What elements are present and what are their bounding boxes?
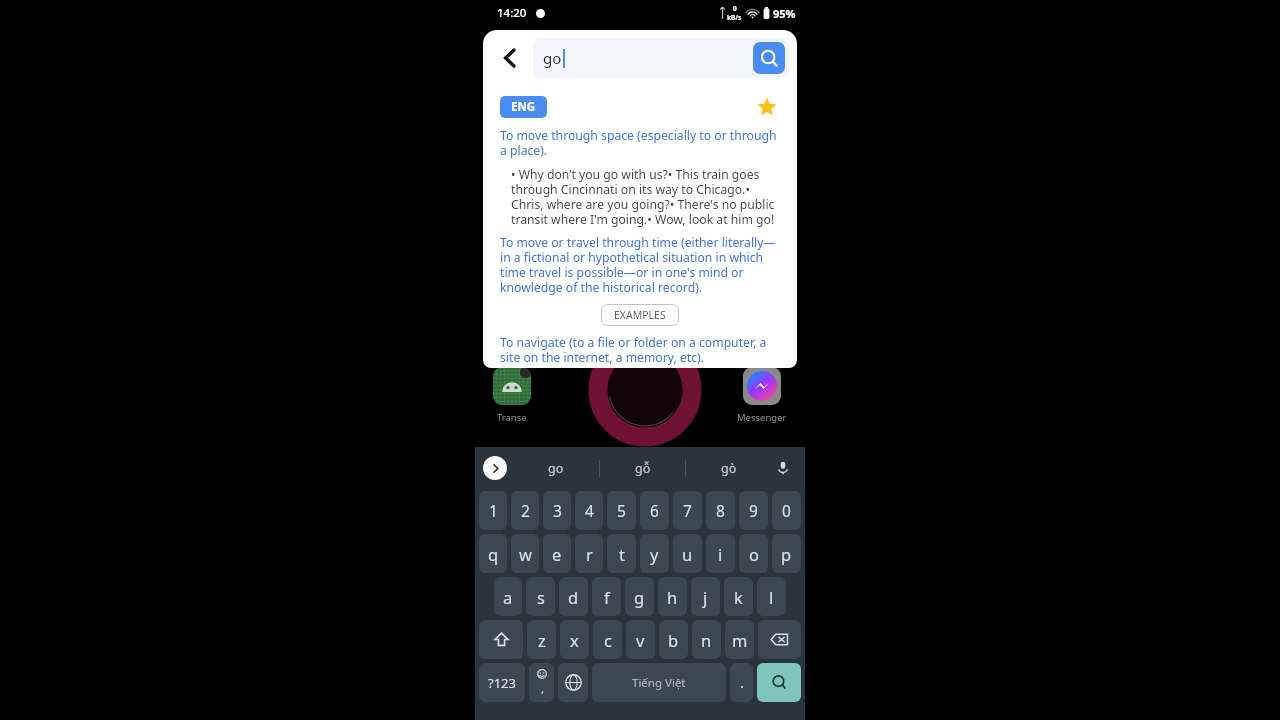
button[interactable]: l [757,577,786,616]
staticText: g [634,586,645,608]
button[interactable]: go [533,38,789,78]
staticText: t [619,543,625,565]
button[interactable]: Shift [479,620,523,659]
button[interactable]: t [607,534,636,573]
staticText: gò [721,460,737,477]
button[interactable]: a [494,577,522,616]
staticText: 3 [553,500,562,521]
button[interactable]: More suggestions [483,456,507,480]
staticText: ENG [511,99,536,115]
button[interactable]: s [526,577,555,616]
button[interactable]: 2 [511,491,539,530]
button[interactable]: gỗ [600,447,685,489]
staticText: ?123 [488,674,516,692]
button[interactable]: u [673,534,702,573]
staticText: r [586,543,593,565]
staticText: , [541,681,544,696]
button[interactable]: n [692,620,721,659]
button[interactable]: Search [753,42,785,74]
staticText: 1 [489,500,498,521]
staticText: q [488,543,499,565]
staticText: m [732,629,748,651]
button[interactable]: e [543,534,571,573]
staticText: c [604,629,612,651]
staticText: 2 [521,500,530,521]
button[interactable]: Change keyboard language [558,663,588,702]
staticText: To navigate (to a file or folder on a co… [500,334,780,366]
staticText: To move or travel through time (either l… [500,234,780,296]
staticText: l [769,586,774,608]
button[interactable]: ENG [500,96,547,118]
button[interactable]: b [659,620,688,659]
staticText: 95% [773,6,796,21]
button[interactable]: Tiếng Việt [592,663,726,702]
button[interactable]: q [479,534,507,573]
button[interactable]: j [691,577,720,616]
staticText: v [636,629,645,651]
staticText: 0 [733,4,737,13]
button[interactable]: Transe app [493,367,531,405]
button[interactable]: Backspace [758,620,801,659]
button[interactable]: g [625,577,654,616]
button[interactable]: 9 [739,491,768,530]
staticText: EXAMPLES [614,308,666,322]
staticText: s [537,586,545,608]
button[interactable]: 0 [772,491,801,530]
button[interactable]: 1 [479,491,507,530]
button[interactable]: z [527,620,556,659]
staticText: a [503,586,513,608]
staticText: d [568,586,579,608]
staticText: 6 [650,500,659,521]
button[interactable]: 6 [640,491,669,530]
button[interactable]: Voice input [771,456,795,480]
button[interactable]: go [513,447,599,489]
button[interactable]: r [575,534,603,573]
button[interactable]: i [706,534,735,573]
staticText: Messenger [737,411,787,424]
button[interactable]: o [739,534,768,573]
button[interactable]: Search [757,663,801,702]
button[interactable]: Emoji and comma [529,663,554,702]
staticText: u [682,543,693,565]
button[interactable]: gò [686,447,771,489]
button[interactable]: Favorite [754,94,780,120]
button[interactable]: 3 [543,491,571,530]
button[interactable]: p [772,534,801,573]
staticText: f [604,586,610,608]
button[interactable]: 4 [575,491,603,530]
staticText: To move through space (especially to or … [500,127,780,159]
button[interactable]: ?123 [479,663,525,702]
staticText: 9 [749,500,758,521]
button[interactable]: Messenger app [743,367,781,405]
button[interactable]: 8 [706,491,735,530]
button[interactable]: h [658,577,687,616]
staticText: w [519,543,532,565]
button[interactable]: m [725,620,754,659]
staticText: gỗ [635,460,651,477]
staticText: Transe [497,411,527,424]
staticText: 0 [782,500,791,521]
staticText: 5 [617,500,626,521]
button[interactable]: y [640,534,669,573]
button[interactable]: v [626,620,655,659]
staticText: 14:20 [497,5,527,21]
staticText: • Why don’t you go with us?• This train … [511,166,780,228]
button[interactable]: c [593,620,622,659]
staticText: 4 [585,500,594,521]
staticText: o [749,543,759,565]
staticText: 7 [683,500,692,521]
button[interactable]: EXAMPLES [601,304,679,326]
button[interactable]: Back [491,39,529,77]
button[interactable]: 5 [607,491,636,530]
staticText: p [781,543,792,565]
button[interactable]: . [730,663,753,702]
button[interactable]: d [559,577,588,616]
button[interactable]: 7 [673,491,702,530]
button[interactable]: x [560,620,589,659]
button[interactable]: f [592,577,621,616]
staticText: b [668,629,679,651]
button[interactable]: w [511,534,539,573]
staticText: go [543,48,562,68]
button[interactable]: k [724,577,753,616]
staticText: 8 [716,500,725,521]
